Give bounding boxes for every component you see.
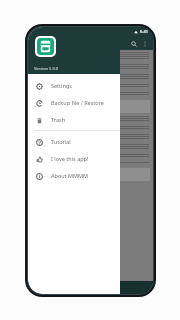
staticText: Tutorial [51,138,71,145]
staticText: Version 5.9.0 [34,66,59,71]
staticText: Settings [51,82,72,89]
staticText: NEW WORKERS [32,170,70,177]
button[interactable]: Settings [28,77,120,94]
button[interactable]: More options [139,38,150,49]
staticText: About MMMM [51,172,88,179]
button[interactable]: Trash [28,111,120,128]
button[interactable]: I love this app! [28,150,120,167]
staticText: 5:41 [140,29,148,34]
button[interactable]: Tutorial [28,133,120,150]
staticText: Backup file / Restore [51,99,104,106]
button[interactable]: About MMMM [28,167,120,184]
staticText: I love this app! [51,155,89,162]
staticText: MAGE WORKS [32,102,66,109]
button[interactable]: Backup file / Restore [28,94,120,111]
button[interactable]: Search [128,38,139,49]
button[interactable]: Settings [30,283,40,293]
staticText: Trash [51,116,66,123]
